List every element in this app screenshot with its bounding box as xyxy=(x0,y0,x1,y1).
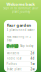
staticText: Your garden xyxy=(6,23,31,28)
staticText: 4d xyxy=(30,57,34,60)
button[interactable]: Fiddle leaf xyxy=(6,56,34,61)
button[interactable]: Monstera xyxy=(6,51,34,56)
staticText: Water now xyxy=(8,42,16,50)
staticText: 1w xyxy=(30,62,34,66)
staticText: Snake plant xyxy=(6,67,21,71)
staticText: 4 plants need water xyxy=(6,28,34,32)
staticText: Monstera xyxy=(6,51,18,55)
staticText: Skip today xyxy=(20,44,33,48)
staticText: 2d xyxy=(30,51,34,55)
staticText: Pothos xyxy=(6,62,16,66)
button[interactable]: Snake plant xyxy=(6,67,34,72)
staticText: Fiddle leaf xyxy=(6,57,21,60)
staticText: 2w xyxy=(30,67,34,71)
staticText: Next watering in 2 days xyxy=(6,35,31,42)
button[interactable]: Pothos xyxy=(6,61,34,67)
staticText: Welcome back xyxy=(6,2,34,7)
button[interactable]: Water now xyxy=(6,44,18,48)
staticText: Sign in to continue your plant journey xyxy=(3,6,38,13)
